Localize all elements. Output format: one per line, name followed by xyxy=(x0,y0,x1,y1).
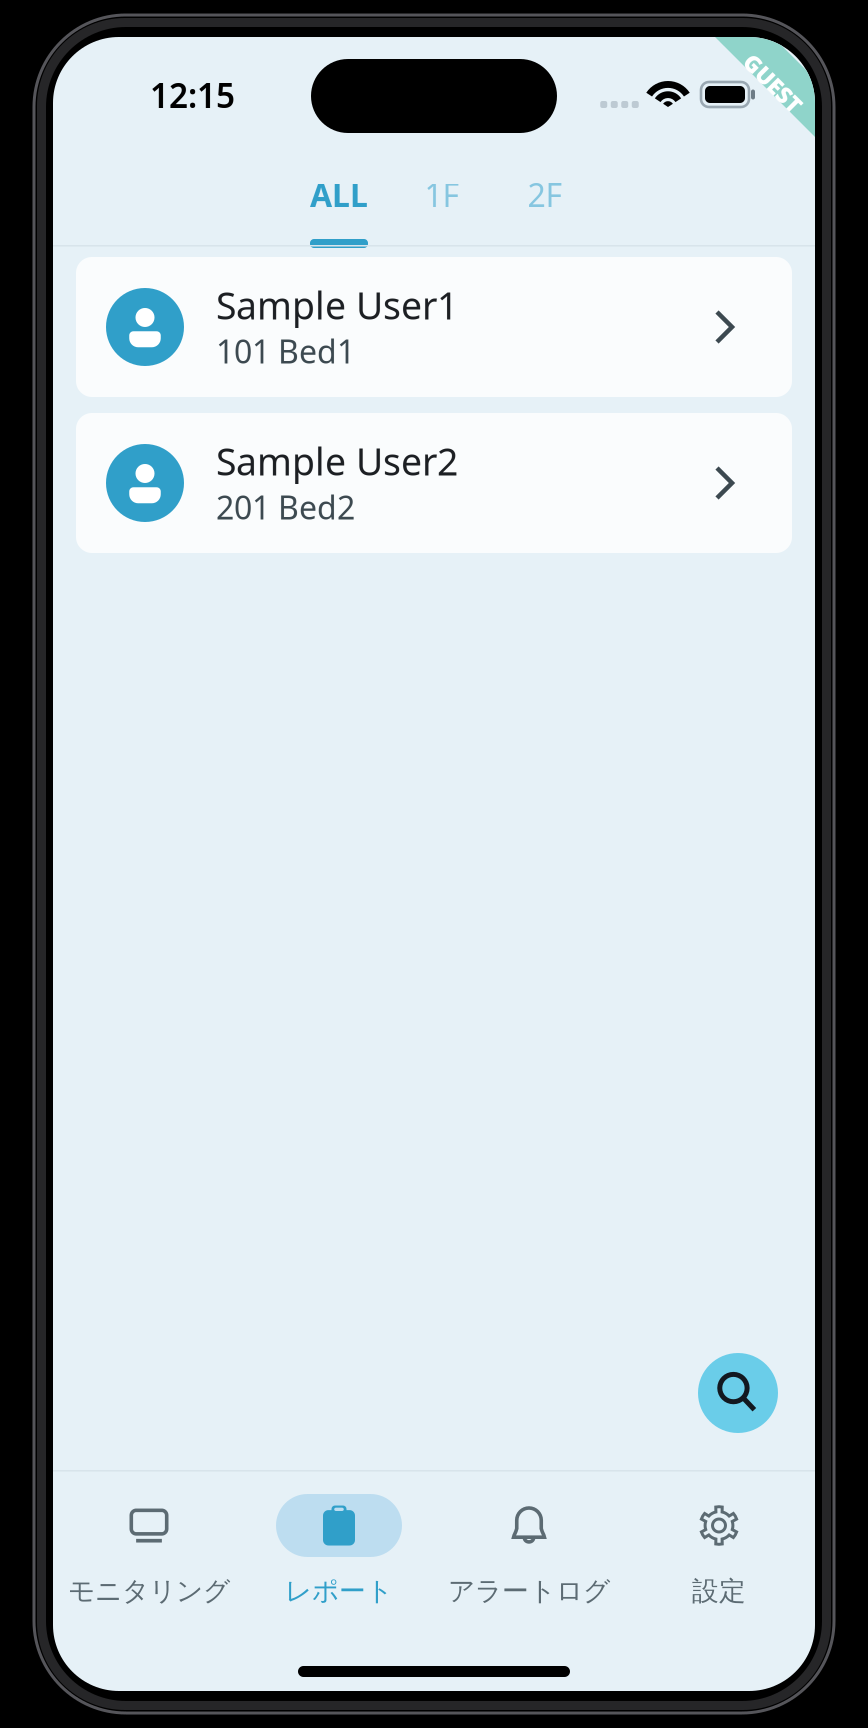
staticText: モニタリング xyxy=(68,1575,230,1607)
staticText: ALL xyxy=(310,173,368,216)
staticText: 1F xyxy=(424,173,459,216)
staticText: Sample User1 xyxy=(216,280,458,330)
button[interactable]: 1F xyxy=(408,150,476,248)
staticText: 設定 xyxy=(692,1575,746,1607)
button[interactable]: Search xyxy=(698,1353,778,1433)
staticText: 12:15 xyxy=(150,73,235,117)
button[interactable]: モニタリング xyxy=(54,1494,244,1611)
button[interactable]: レポート xyxy=(244,1494,434,1611)
button[interactable]: 設定 xyxy=(624,1494,814,1611)
button[interactable]: アラートログ xyxy=(434,1494,624,1611)
staticText: GUEST xyxy=(737,68,809,98)
button[interactable]: Sample User2 xyxy=(76,413,792,553)
staticText: Sample User2 xyxy=(216,436,458,486)
staticText: レポート xyxy=(285,1575,393,1607)
button[interactable]: Sample User1 xyxy=(76,257,792,397)
button[interactable]: ALL xyxy=(305,150,373,248)
staticText: 201 Bed2 xyxy=(216,486,355,528)
button[interactable]: 2F xyxy=(511,150,579,248)
staticText: アラートログ xyxy=(448,1575,610,1607)
staticText: 2F xyxy=(527,173,562,216)
staticText: 101 Bed1 xyxy=(216,330,355,372)
